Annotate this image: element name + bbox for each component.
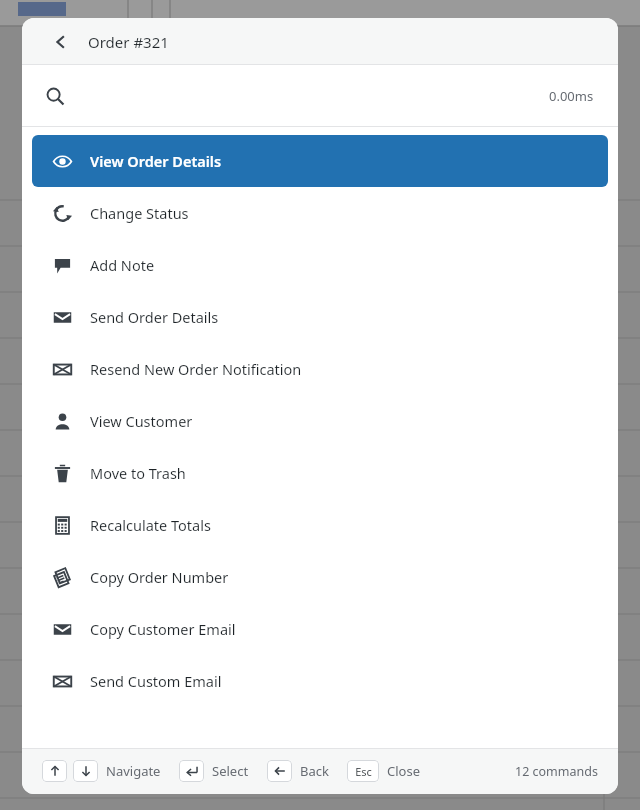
button[interactable]: Copy Order Number [32, 551, 608, 603]
button[interactable]: down [73, 760, 98, 782]
staticText: Navigate [106, 762, 161, 780]
button[interactable]: Back [44, 25, 78, 59]
staticText: View Customer [90, 411, 193, 431]
button[interactable]: Add Note [32, 239, 608, 291]
staticText: 12 commands [515, 763, 598, 780]
staticText: Esc [355, 764, 372, 779]
button[interactable]: Resend New Order Notification [32, 343, 608, 395]
staticText: Back [300, 762, 329, 780]
button[interactable]: up [42, 760, 67, 782]
staticText: Resend New Order Notification [90, 359, 302, 379]
staticText: Change Status [90, 203, 189, 223]
staticText: View Order Details [90, 151, 222, 171]
button[interactable]: Recalculate Totals [32, 499, 608, 551]
button[interactable]: enter [179, 760, 204, 782]
button[interactable]: Send Order Details [32, 291, 608, 343]
staticText: Send Order Details [90, 307, 219, 327]
staticText: Send Custom Email [90, 671, 222, 691]
staticText: Copy Order Number [90, 567, 229, 587]
button[interactable]: Esc [347, 760, 379, 782]
staticText: Order #321 [88, 32, 169, 52]
staticText: Move to Trash [90, 463, 186, 483]
staticText: Close [387, 762, 420, 780]
button[interactable]: 0.00ms [22, 65, 618, 127]
staticText: Select [212, 762, 249, 780]
button[interactable]: Send Custom Email [32, 655, 608, 707]
button[interactable]: View Order Details [32, 135, 608, 187]
staticText: 0.00ms [549, 87, 594, 105]
button[interactable]: Move to Trash [32, 447, 608, 499]
button[interactable]: View Customer [32, 395, 608, 447]
button[interactable]: Copy Customer Email [32, 603, 608, 655]
staticText: Copy Customer Email [90, 619, 236, 639]
staticText: Recalculate Totals [90, 515, 211, 535]
staticText: Add Note [90, 255, 155, 275]
button[interactable]: left [267, 760, 292, 782]
button[interactable]: Change Status [32, 187, 608, 239]
